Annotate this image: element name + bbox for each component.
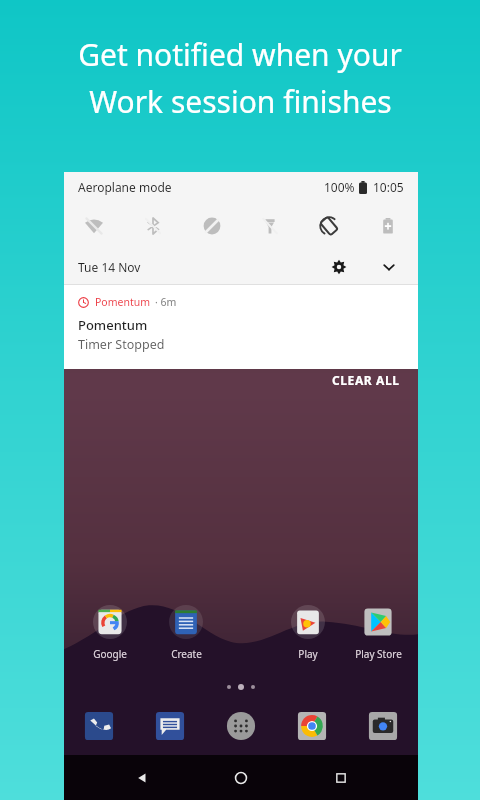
button[interactable]: Pomentum [64,285,418,369]
staticText: 10:05 [373,179,404,195]
staticText: CLEAR ALL [332,372,400,388]
button[interactable]: Flashlight [250,206,290,246]
staticText: 100% [324,179,355,195]
button[interactable]: Recents [319,756,363,800]
staticText: Pomentum [78,316,148,334]
staticText: Google [93,647,127,661]
button[interactable]: Create [148,600,224,663]
button[interactable]: Google [72,600,148,663]
staticText: Create [171,647,202,661]
button[interactable]: Back [120,756,164,800]
button[interactable]: Phone [78,705,120,747]
staticText: Pomentum [95,295,151,309]
staticText: Aeroplane mode [78,179,172,195]
staticText: Play [298,647,318,661]
button[interactable]: CLEAR ALL [328,368,404,392]
staticText: Get notified when your [78,34,402,75]
button[interactable]: Play Store [346,600,410,663]
staticText: Work session finishes [89,81,392,122]
button[interactable]: Home [219,756,263,800]
button[interactable]: Wi-Fi [74,206,114,246]
button[interactable]: Auto rotate [309,206,349,246]
button[interactable]: Settings [326,254,352,280]
staticText: Timer Stopped [78,336,165,353]
button[interactable]: Camera [362,705,404,747]
button[interactable]: All apps [220,705,262,747]
button[interactable]: Chrome [291,705,333,747]
staticText: Tue 14 Nov [78,259,141,275]
staticText: · 6m [155,295,177,309]
button[interactable]: Play [270,600,346,663]
button[interactable]: Messages [149,705,191,747]
button[interactable]: Expand [376,254,402,280]
button[interactable]: Battery saver [368,206,408,246]
button[interactable]: Do not disturb [192,206,232,246]
button[interactable]: Bluetooth [133,206,173,246]
staticText: Play Store [355,647,402,661]
